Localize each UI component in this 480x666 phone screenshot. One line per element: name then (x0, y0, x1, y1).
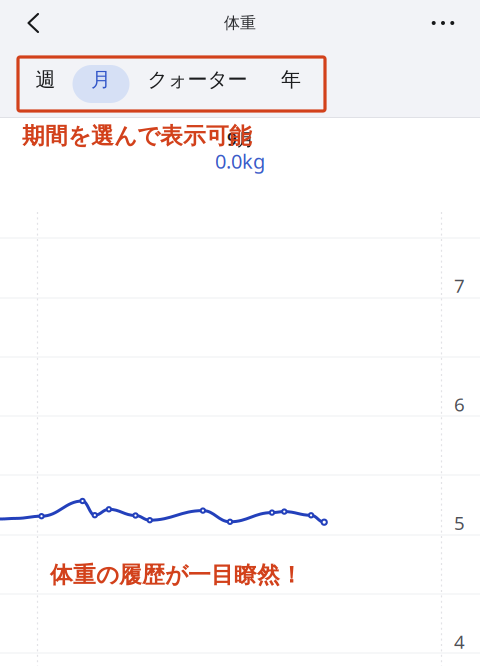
staticText: 6 (454, 392, 465, 417)
button[interactable]: 月 (70, 57, 128, 111)
staticText: 5 (454, 510, 465, 535)
staticText: 4 (454, 629, 465, 654)
staticText: 7 (454, 273, 465, 298)
button[interactable]: クォーター (128, 57, 266, 111)
staticText: クォーター (147, 67, 247, 92)
button[interactable]: その他 (421, 0, 465, 46)
staticText: 月 (91, 67, 111, 92)
staticText: 体重 (224, 13, 256, 33)
staticText: 年 (281, 67, 301, 92)
button[interactable]: 戻る (11, 0, 55, 46)
button[interactable]: 年 (266, 57, 325, 111)
staticText: 9月 (227, 127, 254, 150)
button[interactable]: 週 (18, 57, 70, 111)
staticText: 期間を選んで表示可能 (22, 122, 252, 150)
staticText: 体重の履歴が一目瞭然！ (50, 561, 303, 589)
staticText: 週 (35, 67, 55, 92)
staticText: 0.0kg (215, 148, 265, 174)
